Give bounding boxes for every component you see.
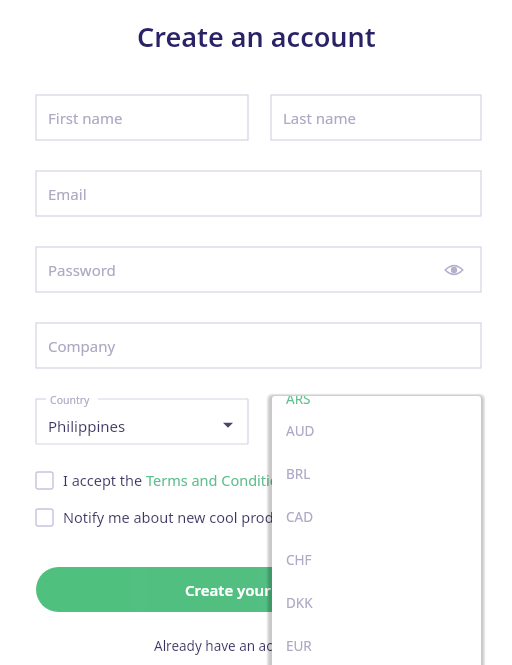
button[interactable]: Show password [443,259,465,281]
staticText: BRL [286,465,311,483]
button[interactable]: Already have an account? Log in [154,637,358,655]
staticText: Email [48,184,87,204]
button[interactable]: ARS [286,396,311,408]
button[interactable]: Last name [271,95,481,140]
button[interactable]: CAD [272,495,481,538]
button[interactable]: CHF [272,538,481,581]
button[interactable]: BRL [272,452,481,495]
staticText: Create your account [185,580,333,600]
staticText: DKK [286,594,313,612]
staticText: I accept the Terms and Conditions [63,470,295,490]
staticText: CAD [286,508,314,526]
button[interactable]: I accept the Terms and Conditions [36,468,295,492]
staticText: AUD [286,422,315,440]
staticText: Last name [283,108,356,128]
staticText: Create an account [137,18,376,55]
button[interactable]: DKK [272,581,481,624]
staticText: CHF [286,551,312,569]
button[interactable]: Country selector [36,399,248,444]
button[interactable]: Password [36,247,481,292]
staticText: Company [48,336,116,356]
staticText: Notify me about new cool products [63,507,302,527]
button[interactable]: Notify me about new cool products [36,505,302,529]
staticText: Philippines [48,416,126,436]
staticText: Already have an account? Log in [154,637,358,655]
button[interactable]: Create your account [36,567,481,612]
staticText: Password [48,260,116,280]
button[interactable]: EUR [272,624,481,665]
staticText: First name [48,108,123,128]
staticText: ARS [286,396,311,408]
button[interactable]: Email [36,171,481,216]
button[interactable]: First name [36,95,248,140]
button[interactable]: Company [36,323,481,368]
staticText: Country [50,393,90,407]
staticText: EUR [286,637,312,655]
button[interactable]: AUD [272,409,481,452]
